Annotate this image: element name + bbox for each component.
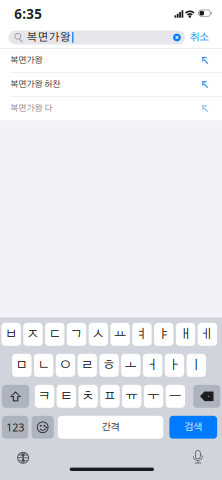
staticText: ㅣ: [190, 359, 203, 372]
button[interactable]: ㅈ: [23, 323, 43, 346]
staticText: 취소: [189, 32, 209, 42]
staticText: ㅗ: [124, 359, 137, 372]
staticText: ㅂ: [5, 328, 18, 341]
button[interactable]: ㅁ: [12, 354, 31, 377]
button[interactable]: Delete: [193, 385, 220, 408]
button[interactable]: 간격: [58, 416, 163, 439]
staticText: 검색: [184, 422, 202, 432]
button[interactable]: Dictation: [192, 449, 203, 463]
button[interactable]: ㅠ: [122, 385, 141, 408]
staticText: ㄴ: [37, 359, 50, 372]
staticText: 복면가왕: [10, 56, 42, 65]
button[interactable]: ㅎ: [99, 354, 119, 377]
button[interactable]: ㅋ: [35, 385, 54, 408]
button[interactable]: 123: [2, 416, 28, 439]
button[interactable]: ㅕ: [132, 323, 152, 346]
staticText: ㄷ: [48, 328, 61, 341]
button[interactable]: ㅐ: [176, 323, 195, 346]
button[interactable]: 검색: [169, 416, 217, 439]
staticText: ㅅ: [92, 328, 105, 341]
staticText: ㅔ: [201, 328, 214, 341]
button[interactable]: Shift: [2, 385, 29, 408]
staticText: ㅕ: [135, 328, 148, 341]
staticText: ㅋ: [38, 390, 51, 403]
button[interactable]: ㄱ: [67, 323, 86, 346]
button[interactable]: 복면가왕 다: [0, 97, 222, 120]
button[interactable]: ㅔ: [198, 323, 217, 346]
button[interactable]: ㅌ: [57, 385, 76, 408]
staticText: ㅓ: [146, 359, 159, 372]
button[interactable]: Clear text: [173, 34, 185, 41]
staticText: ㄱ: [70, 328, 83, 341]
staticText: ㅍ: [103, 390, 116, 403]
button[interactable]: ㅍ: [100, 385, 120, 408]
staticText: ㅜ: [147, 390, 160, 403]
button[interactable]: ㅡ: [166, 385, 185, 408]
button[interactable]: ㄴ: [34, 354, 53, 377]
button[interactable]: ㅓ: [143, 354, 162, 377]
button[interactable]: Next keyboard: [17, 452, 29, 464]
button[interactable]: ㅗ: [121, 354, 140, 377]
staticText: 6:35: [14, 5, 42, 23]
staticText: ㄹ: [81, 359, 94, 372]
button[interactable]: ㅣ: [187, 354, 206, 377]
button[interactable]: ㅅ: [89, 323, 108, 346]
button[interactable]: ㅊ: [78, 385, 98, 408]
staticText: 복면가왕 다: [10, 104, 52, 113]
button[interactable]: ㅇ: [56, 354, 75, 377]
staticText: ㅡ: [169, 390, 182, 403]
staticText: ㅎ: [103, 359, 116, 372]
button[interactable]: 취소: [185, 27, 213, 48]
staticText: ㅊ: [82, 390, 95, 403]
staticText: ㅁ: [15, 359, 28, 372]
button[interactable]: 복면가왕 허찬: [0, 73, 222, 96]
staticText: ㅈ: [26, 328, 39, 341]
button[interactable]: ㅜ: [144, 385, 163, 408]
button[interactable]: ㅂ: [1, 323, 21, 346]
staticText: 복면가왕 허찬: [10, 80, 60, 89]
staticText: ㅛ: [114, 328, 127, 341]
button[interactable]: Emoji: [32, 416, 54, 439]
button[interactable]: ㄹ: [78, 354, 97, 377]
button[interactable]: ㅛ: [110, 323, 130, 346]
button[interactable]: ㅑ: [154, 323, 173, 346]
staticText: ㅐ: [179, 328, 192, 341]
button[interactable]: 복면가왕: [0, 48, 222, 72]
staticText: ㅑ: [157, 328, 170, 341]
staticText: 복면가왕: [27, 32, 71, 43]
button[interactable]: ㅏ: [165, 354, 184, 377]
staticText: 123: [6, 420, 24, 434]
staticText: ㅠ: [125, 390, 138, 403]
button[interactable]: ㄷ: [45, 323, 64, 346]
staticText: ㅌ: [60, 390, 73, 403]
staticText: ㅇ: [59, 359, 72, 372]
staticText: ㅏ: [168, 359, 181, 372]
staticText: 간격: [101, 422, 119, 432]
